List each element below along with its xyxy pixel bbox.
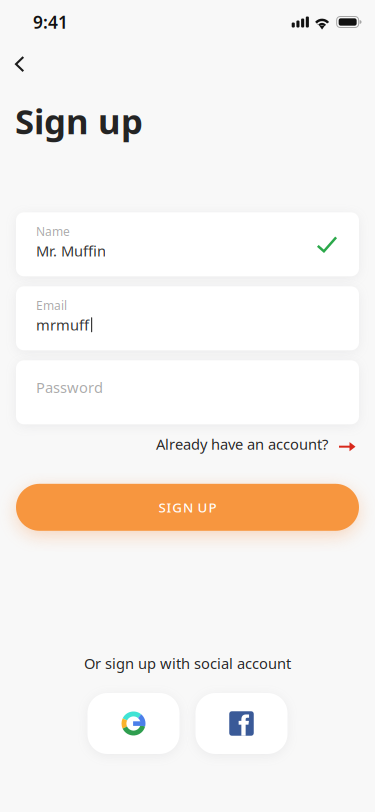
button[interactable]: Back xyxy=(0,44,39,81)
staticText: Password xyxy=(36,378,103,397)
button[interactable]: Already have an account? xyxy=(156,428,375,460)
button[interactable]: SIGN UP xyxy=(16,484,359,531)
staticText: Mr. Muffin xyxy=(36,241,106,260)
staticText: Or sign up with social account xyxy=(84,653,291,673)
staticText: mrmuff xyxy=(36,315,89,334)
staticText: Name xyxy=(36,223,70,239)
staticText: Email xyxy=(36,297,67,313)
staticText: 9:41 xyxy=(33,10,68,33)
button[interactable]: Sign up with Google xyxy=(87,693,179,754)
staticText: Sign up xyxy=(15,98,143,144)
button[interactable]: Sign up with Facebook xyxy=(195,693,287,754)
staticText: Already have an account? xyxy=(156,434,328,454)
staticText: SIGN UP xyxy=(159,498,216,516)
